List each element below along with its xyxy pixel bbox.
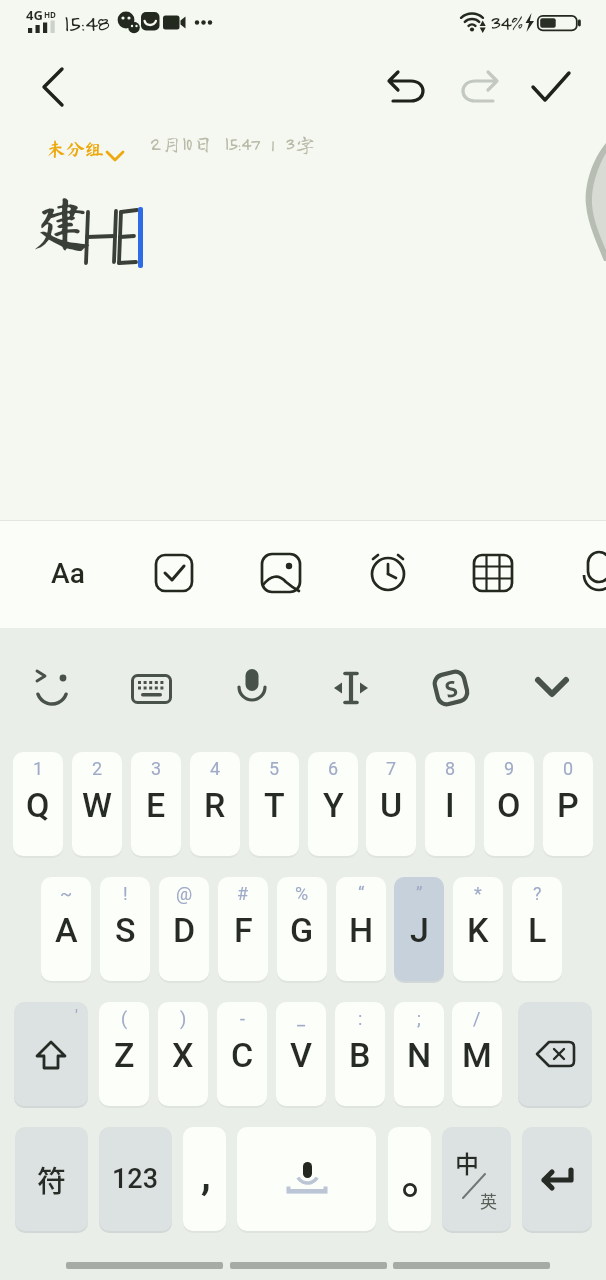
staticText: 7 [386, 758, 397, 779]
staticText: N [407, 1035, 432, 1075]
staticText: ( [121, 1008, 128, 1029]
button[interactable]: 未分组 [45, 136, 130, 172]
button[interactable] [385, 68, 429, 108]
button[interactable] [236, 668, 268, 710]
staticText: 2 [92, 758, 103, 779]
staticText: F [234, 910, 253, 950]
staticText: D [173, 910, 196, 950]
staticText: ? [533, 883, 542, 904]
staticText: # [237, 883, 249, 904]
button[interactable]: ! [100, 877, 150, 981]
button[interactable]: 123 [99, 1127, 172, 1231]
staticText: T [264, 785, 285, 825]
button[interactable] [154, 553, 194, 593]
staticText: 9 [504, 758, 515, 779]
button[interactable]: ' [14, 1002, 88, 1106]
staticText: _ [297, 1008, 306, 1029]
staticText: 建 [32, 193, 92, 253]
button[interactable] [261, 553, 301, 593]
button[interactable] [473, 554, 513, 592]
staticText: ~ [60, 883, 73, 904]
staticText: 符 [37, 1158, 67, 1200]
button[interactable] [34, 666, 74, 706]
button[interactable]: , [183, 1127, 226, 1231]
staticText: 4G [26, 6, 43, 24]
staticText: S [441, 672, 461, 704]
button[interactable]: ” [394, 877, 444, 981]
staticText: G [290, 910, 314, 950]
button[interactable]: “ [336, 877, 386, 981]
staticText: - [240, 1008, 245, 1029]
staticText: “ [358, 883, 365, 904]
staticText: S [115, 910, 136, 950]
button[interactable]: 0 [543, 752, 593, 856]
staticText: ) [180, 1008, 187, 1029]
staticText: O [497, 785, 521, 825]
button[interactable]: S [430, 667, 472, 709]
button[interactable]: _ [276, 1002, 326, 1106]
staticText: 123 [112, 1163, 159, 1195]
staticText: L [528, 910, 547, 950]
button[interactable] [333, 670, 369, 706]
button[interactable] [518, 1002, 592, 1106]
button[interactable] [237, 1127, 376, 1231]
staticText: M [462, 1035, 492, 1075]
button[interactable]: 4 [190, 752, 240, 856]
staticText: B [349, 1035, 371, 1075]
button[interactable]: 符 [15, 1127, 88, 1231]
button[interactable]: 1 [13, 752, 63, 856]
button[interactable]: ~ [41, 877, 91, 981]
button[interactable]: 3 [131, 752, 181, 856]
button[interactable]: ; [394, 1002, 444, 1106]
staticText: I [445, 785, 455, 825]
staticText: 中 [455, 1145, 479, 1180]
staticText: : [358, 1008, 363, 1029]
button[interactable] [522, 1127, 592, 1231]
staticText: 6 [328, 758, 339, 779]
button[interactable] [528, 66, 574, 108]
staticText: / [473, 1008, 481, 1029]
button[interactable]: # [218, 877, 268, 981]
staticText: ” [416, 883, 423, 904]
staticText: K [467, 910, 489, 950]
button[interactable] [584, 552, 606, 596]
button[interactable]: @ [159, 877, 209, 981]
button[interactable] [367, 552, 409, 594]
button[interactable]: 7 [366, 752, 416, 856]
button[interactable]: % [277, 877, 327, 981]
staticText: Y [323, 785, 344, 825]
staticText: ! [123, 883, 128, 904]
button[interactable]: * [453, 877, 503, 981]
button[interactable] [388, 1127, 431, 1231]
staticText: 1 [33, 758, 44, 779]
staticText: R [204, 785, 226, 825]
button[interactable]: ( [99, 1002, 149, 1106]
button[interactable]: - [217, 1002, 267, 1106]
button[interactable] [457, 68, 501, 108]
button[interactable]: ? [512, 877, 562, 981]
staticText: C [231, 1035, 254, 1075]
button[interactable]: 中 [442, 1127, 511, 1231]
button[interactable] [534, 674, 570, 702]
button[interactable]: : [335, 1002, 385, 1106]
staticText: Q [26, 785, 50, 825]
staticText: 3 [151, 758, 162, 779]
button[interactable]: 8 [425, 752, 475, 856]
button[interactable] [131, 674, 172, 704]
staticText: * [474, 883, 482, 904]
button[interactable]: 2 [72, 752, 122, 856]
button[interactable]: Aa [38, 549, 98, 597]
button[interactable]: ) [158, 1002, 208, 1106]
staticText: X [172, 1035, 194, 1075]
button[interactable]: 5 [249, 752, 299, 856]
staticText: H [349, 910, 374, 950]
staticText: @ [176, 883, 193, 904]
staticText: 15:48 [64, 8, 109, 36]
button[interactable]: 6 [308, 752, 358, 856]
button[interactable]: / [452, 1002, 502, 1106]
staticText: 0 [563, 758, 574, 779]
button[interactable] [30, 62, 80, 112]
staticText: U [380, 785, 403, 825]
button[interactable]: 9 [484, 752, 534, 856]
staticText: W [82, 785, 112, 825]
